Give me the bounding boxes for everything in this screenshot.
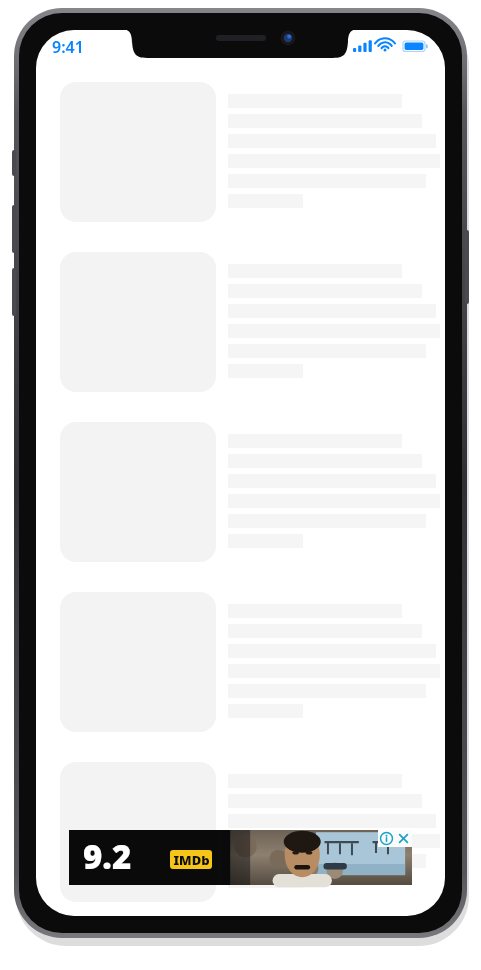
- button[interactable]: IMDb advertisement: [69, 830, 412, 885]
- button[interactable]: Close ad: [395, 830, 412, 847]
- staticText: IMDb: [173, 851, 210, 869]
- staticText: 9.2: [83, 834, 132, 879]
- staticText: 9:41: [52, 36, 84, 58]
- button[interactable]: [36, 252, 445, 392]
- button[interactable]: [36, 422, 445, 562]
- button[interactable]: [36, 762, 445, 902]
- button[interactable]: Ad information: [378, 830, 395, 847]
- button[interactable]: [36, 82, 445, 222]
- button[interactable]: [36, 592, 445, 732]
